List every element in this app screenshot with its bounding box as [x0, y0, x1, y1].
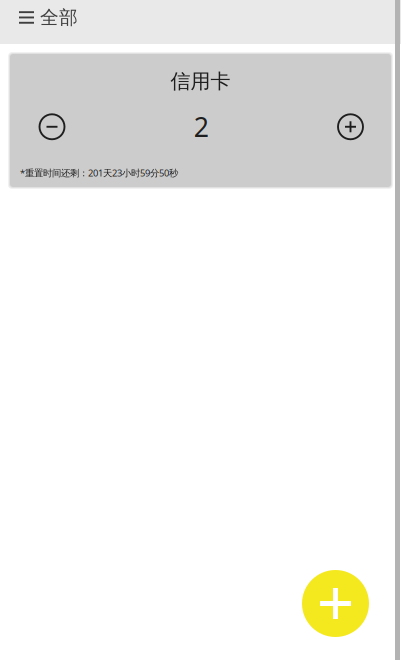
button[interactable]: 增加 — [334, 110, 367, 143]
button[interactable]: 添加 — [302, 570, 369, 637]
staticText: 信用卡 — [170, 69, 230, 94]
button[interactable]: 减少 — [35, 110, 68, 143]
button[interactable]: 全部 — [0, 0, 90, 44]
staticText: *重置时间还剩：201天23小时59分50秒 — [20, 167, 178, 179]
staticText: 2 — [194, 109, 209, 144]
staticText: 全部 — [40, 6, 78, 29]
